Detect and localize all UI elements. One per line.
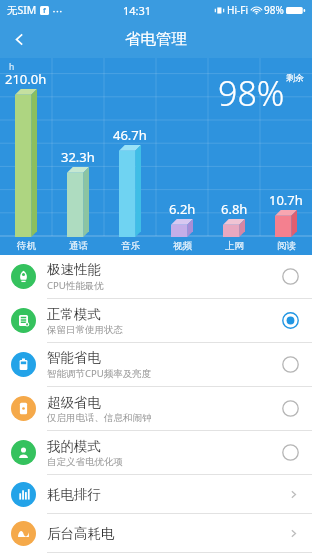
staticText: h <box>9 61 15 73</box>
staticText: 待机 <box>17 240 36 252</box>
staticText: 保留日常使用状态 <box>47 324 123 336</box>
staticText: 14:31 <box>123 3 152 18</box>
staticText: 仅启用电话、信息和闹钟 <box>47 412 152 424</box>
staticText: 阅读 <box>277 240 296 252</box>
staticText: 无SIM <box>7 3 37 17</box>
staticText: CPU性能最优 <box>47 279 104 292</box>
staticText: 32.3h <box>61 148 95 166</box>
button[interactable]: 极速性能 <box>0 255 312 299</box>
staticText: 46.7h <box>113 126 147 144</box>
staticText: 上网 <box>225 240 244 252</box>
staticText: 正常模式 <box>47 306 101 323</box>
staticText: 极速性能 <box>47 261 101 278</box>
button[interactable]: 超级省电 <box>0 387 312 431</box>
button[interactable]: 耗电排行 <box>0 475 312 514</box>
staticText: 通话 <box>69 240 88 252</box>
staticText: 超级省电 <box>47 394 101 411</box>
staticText: 智能调节CPU频率及亮度 <box>47 367 152 380</box>
staticText: 自定义省电优化项 <box>47 456 123 468</box>
staticText: 98% <box>218 70 285 116</box>
staticText: 98% <box>264 3 284 17</box>
staticText: 6.8h <box>221 200 248 218</box>
staticText: 耗电排行 <box>47 486 288 503</box>
staticText: 智能省电 <box>47 349 101 366</box>
staticText: 剩余 <box>286 72 304 83</box>
staticText: 后台高耗电 <box>47 525 288 542</box>
staticText: 6.2h <box>169 200 196 218</box>
staticText: 210.0h <box>5 70 47 88</box>
staticText: f <box>43 6 46 15</box>
staticText: 我的模式 <box>47 438 101 455</box>
button[interactable]: 我的模式 <box>0 431 312 475</box>
staticText: 音乐 <box>121 240 140 252</box>
staticText: 省电管理 <box>125 29 187 49</box>
staticText: 10.7h <box>269 191 303 209</box>
button[interactable]: 智能省电 <box>0 343 312 387</box>
button[interactable]: 正常模式 <box>0 299 312 343</box>
button[interactable]: Back <box>0 20 38 58</box>
button[interactable]: 后台高耗电 <box>0 514 312 553</box>
staticText: 视频 <box>173 240 192 252</box>
staticText: Hi-Fi <box>227 3 248 17</box>
